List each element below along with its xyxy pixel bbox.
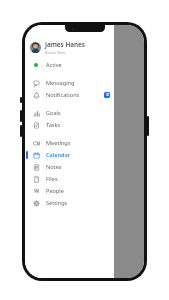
button[interactable]: Notes <box>25 161 114 173</box>
staticText: Goals <box>46 109 61 117</box>
staticText: Active <box>46 61 62 69</box>
staticText: Calendar <box>46 151 71 159</box>
staticText: 3 <box>106 92 109 98</box>
staticText: Notifications <box>46 91 80 99</box>
button[interactable]: Close navigation drawer <box>114 25 144 278</box>
staticText: People <box>46 187 64 195</box>
staticText: Settings <box>46 199 68 207</box>
button[interactable]: Tasks <box>25 119 114 131</box>
staticText: Tasks <box>46 121 61 129</box>
button[interactable]: Calendar <box>25 149 114 161</box>
button[interactable]: Settings <box>25 197 114 209</box>
staticText: Meetings <box>46 139 71 147</box>
staticText: Active Now <box>45 50 66 55</box>
button[interactable]: James Hanes <box>25 39 114 55</box>
staticText: Files <box>46 175 58 183</box>
button[interactable]: Meetings <box>25 137 114 149</box>
button[interactable]: Active <box>25 59 114 71</box>
staticText: Notes <box>46 163 62 171</box>
button[interactable]: Notifications <box>25 89 114 101</box>
button[interactable]: Goals <box>25 107 114 119</box>
button[interactable]: People <box>25 185 114 197</box>
staticText: James Hanes <box>45 40 85 49</box>
button[interactable]: Messaging <box>25 77 114 89</box>
button[interactable]: Files <box>25 173 114 185</box>
staticText: Messaging <box>46 79 75 87</box>
